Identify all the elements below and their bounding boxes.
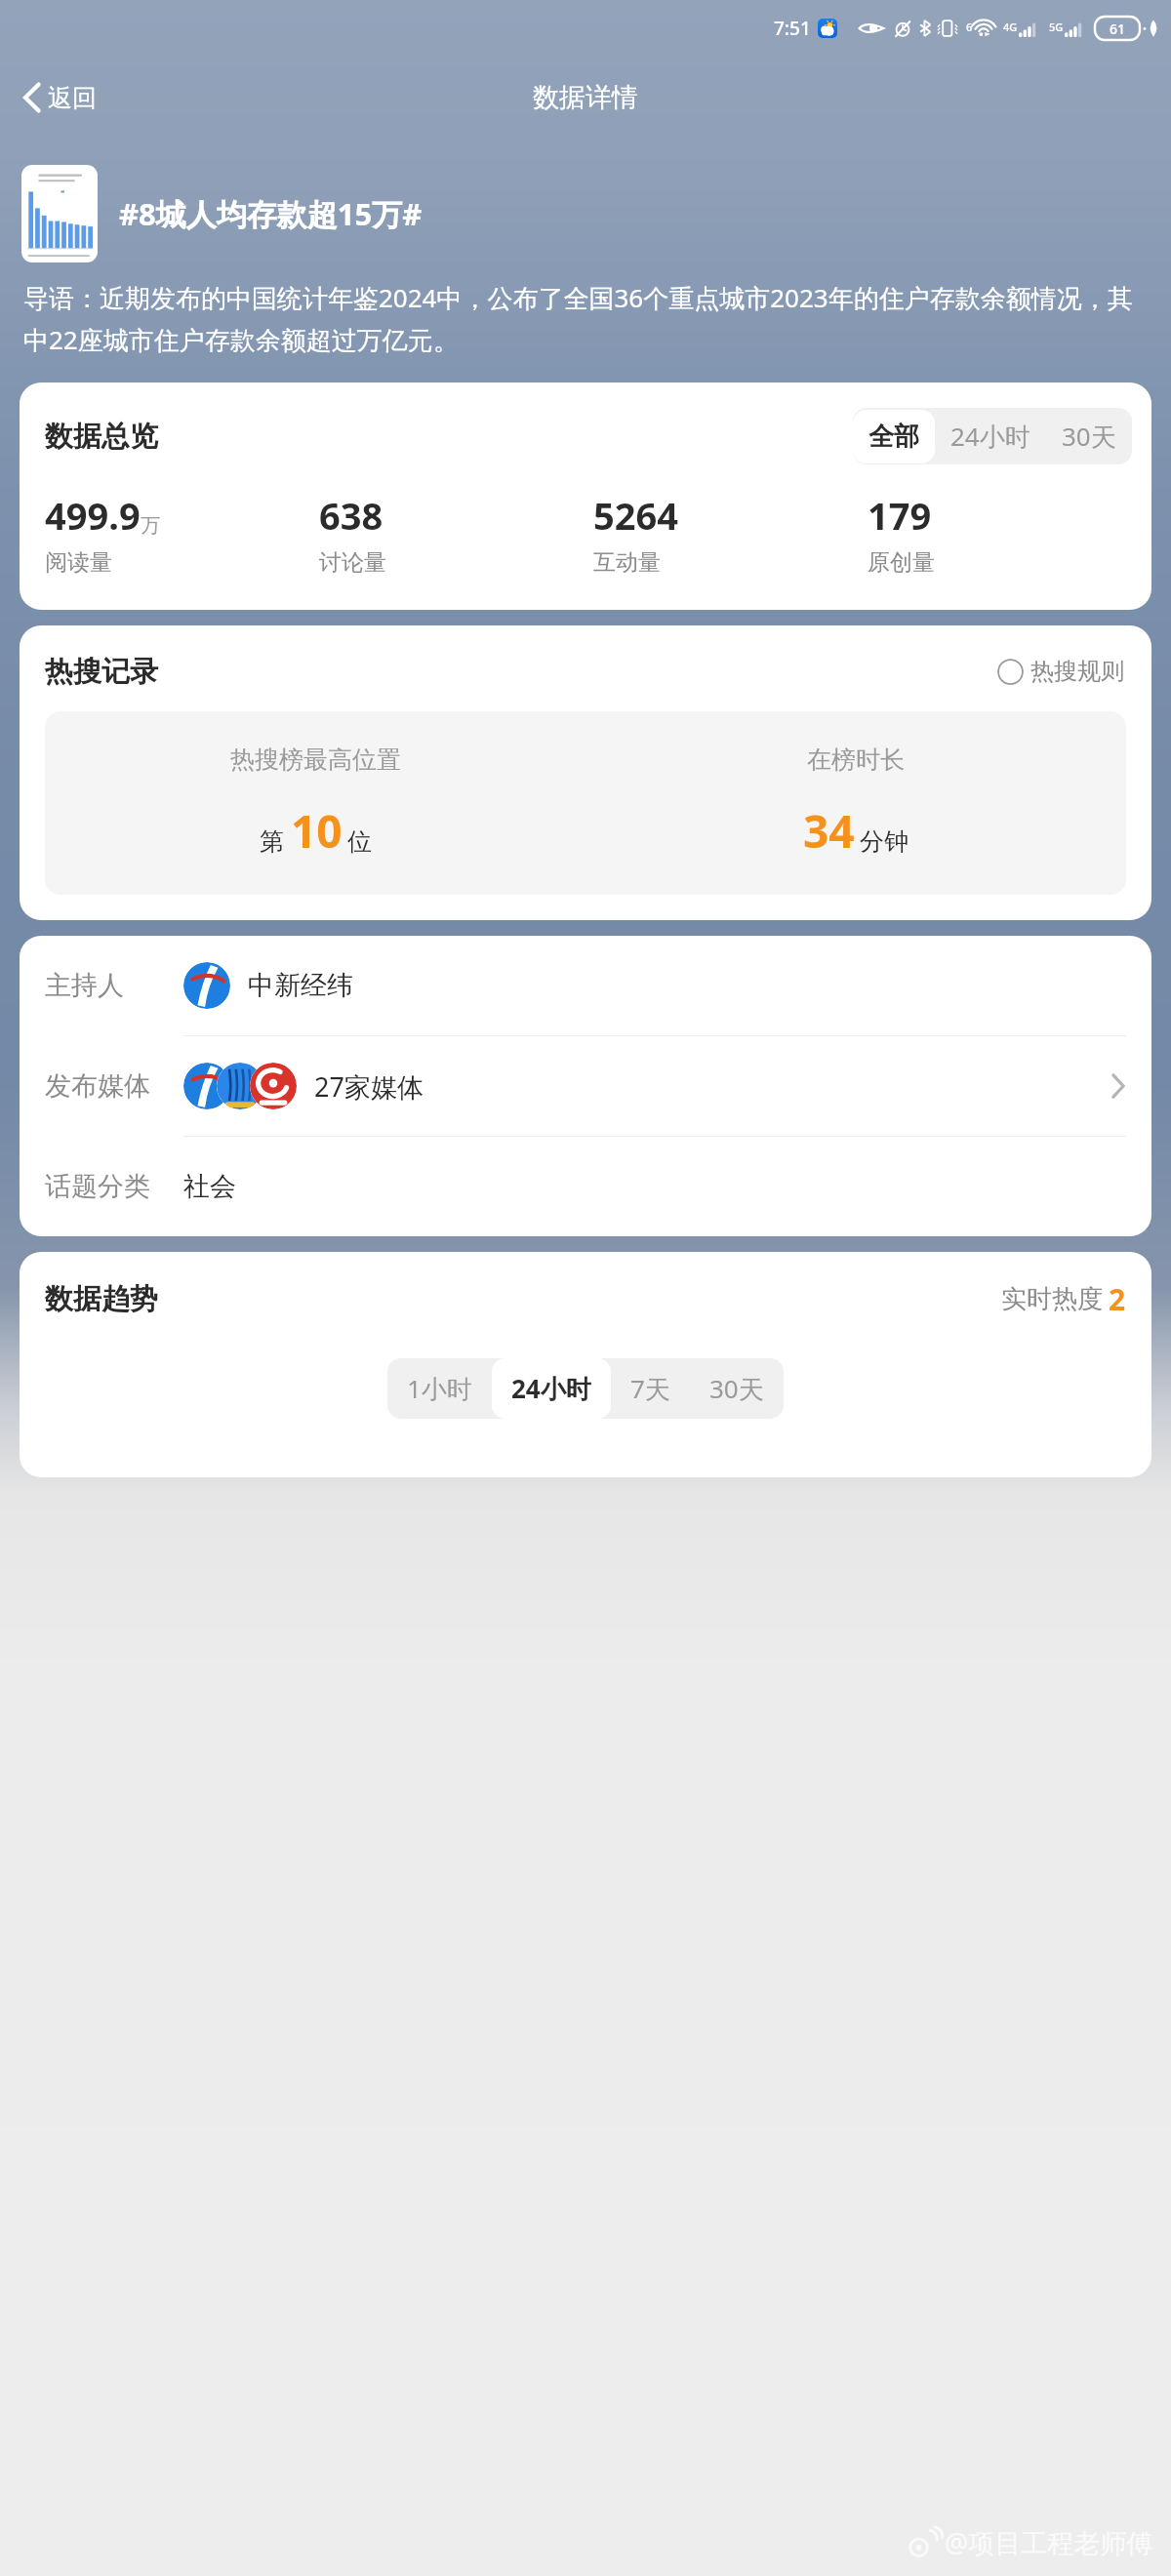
staticText: 互动量 <box>593 548 661 577</box>
button[interactable]: 30天 <box>1046 408 1132 464</box>
staticText: 34 <box>803 800 855 862</box>
staticText: 4G <box>1003 20 1018 34</box>
staticText: 阅读量 <box>45 548 112 577</box>
button[interactable]: 24小时 <box>935 408 1046 464</box>
staticText: 位 <box>347 826 372 857</box>
button[interactable]: 24小时 <box>492 1358 611 1419</box>
button[interactable]: 话题分类 <box>20 1137 1151 1236</box>
button[interactable]: 1小时 <box>387 1358 492 1419</box>
staticText: 主持人 <box>45 969 170 1002</box>
staticText: 在榜时长 <box>807 745 905 775</box>
staticText: 10 <box>291 800 343 862</box>
button[interactable]: 热搜规则 <box>993 653 1128 690</box>
staticText: 话题分类 <box>45 1170 170 1203</box>
button[interactable]: #8城人均存款超15万# <box>21 165 1150 262</box>
button[interactable]: 主持人 <box>20 936 1151 1035</box>
staticText: #8城人均存款超15万# <box>119 193 423 234</box>
staticText: 6 <box>966 20 973 34</box>
staticText: 24小时 <box>511 1371 591 1406</box>
staticText: 30天 <box>1062 419 1116 454</box>
staticText: 数据总览 <box>45 419 158 455</box>
staticText: 第 <box>260 826 284 857</box>
button[interactable]: 30天 <box>690 1358 784 1419</box>
staticText: @项目工程老师傅 <box>945 2524 1153 2560</box>
staticText: 1小时 <box>407 1371 472 1406</box>
staticText: 2 <box>1109 1279 1126 1319</box>
staticText: 返回 <box>48 83 97 113</box>
button[interactable]: 7天 <box>611 1358 690 1419</box>
staticText: 499.9 <box>45 490 141 541</box>
staticText: 发布媒体 <box>45 1069 170 1103</box>
button[interactable]: 返回 <box>14 75 104 120</box>
staticText: 5264 <box>593 490 678 541</box>
staticText: 30天 <box>709 1371 764 1406</box>
staticText: 导语：近期发布的中国统计年鉴2024中，公布了全国36个重点城市2023年的住户… <box>23 280 1148 357</box>
staticText: 全部 <box>868 421 919 453</box>
staticText: 7:51 <box>774 16 811 41</box>
staticText: 中新经纬 <box>248 969 353 1002</box>
button[interactable]: 全部 <box>853 410 935 463</box>
staticText: 数据详情 <box>533 81 638 114</box>
staticText: 热搜记录 <box>45 654 158 690</box>
staticText: 社会 <box>183 1170 236 1203</box>
staticText: 原创量 <box>868 548 935 577</box>
staticText: 24小时 <box>950 419 1030 454</box>
staticText: 热搜规则 <box>1030 657 1124 686</box>
staticText: 27家媒体 <box>314 1068 424 1105</box>
staticText: 数据趋势 <box>45 1281 158 1317</box>
button[interactable]: 发布媒体 <box>20 1036 1151 1136</box>
staticText: 61 <box>1110 20 1126 38</box>
staticText: 5G <box>1049 20 1064 34</box>
staticText: 热搜榜最高位置 <box>230 745 401 775</box>
staticText: 实时热度 <box>1001 1283 1103 1315</box>
staticText: 179 <box>868 490 932 541</box>
staticText: 638 <box>319 490 384 541</box>
staticText: 7天 <box>630 1371 670 1406</box>
staticText: 分钟 <box>860 826 909 857</box>
staticText: 讨论量 <box>319 548 386 577</box>
staticText: 万 <box>141 513 160 538</box>
